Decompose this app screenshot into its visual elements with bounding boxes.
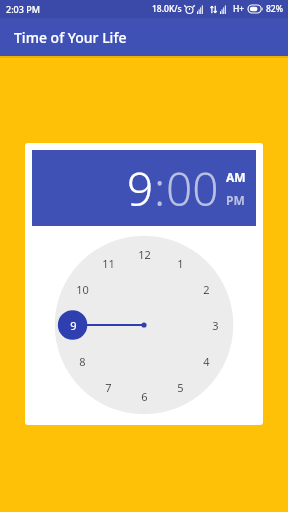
button[interactable]: 3 bbox=[201, 311, 230, 340]
staticText: 2 bbox=[203, 282, 210, 297]
staticText: 4 bbox=[203, 354, 210, 369]
button[interactable]: 00 bbox=[166, 157, 219, 220]
button[interactable]: PM bbox=[226, 192, 245, 208]
button[interactable]: 2 bbox=[192, 275, 221, 304]
staticText: Time of Your Life bbox=[14, 28, 127, 47]
staticText: 5 bbox=[177, 380, 184, 395]
button[interactable]: 9 bbox=[127, 157, 154, 220]
button[interactable]: 11 bbox=[94, 249, 123, 278]
staticText: 82% bbox=[266, 3, 283, 15]
staticText: : bbox=[154, 157, 166, 220]
staticText: 7 bbox=[105, 380, 112, 395]
staticText: 3 bbox=[212, 318, 219, 333]
button[interactable]: 5 bbox=[166, 373, 195, 402]
staticText: 11 bbox=[102, 256, 115, 271]
button[interactable]: 7 bbox=[94, 373, 123, 402]
button[interactable]: 8 bbox=[68, 347, 97, 376]
button[interactable]: 6 bbox=[130, 382, 159, 411]
staticText: 8 bbox=[79, 354, 86, 369]
staticText: AM bbox=[226, 169, 246, 185]
staticText: 1 bbox=[177, 256, 184, 271]
staticText: 12 bbox=[138, 247, 151, 262]
button[interactable]: 1 bbox=[166, 249, 195, 278]
staticText: PM bbox=[226, 192, 245, 208]
staticText: 6 bbox=[141, 389, 148, 404]
staticText: 2:03 PM bbox=[6, 3, 40, 15]
button[interactable]: Clock face, hour picker bbox=[32, 232, 256, 418]
button[interactable]: AM bbox=[226, 169, 246, 185]
button[interactable]: 12 bbox=[130, 240, 159, 269]
button[interactable]: 9 bbox=[59, 311, 88, 340]
staticText: 18.0K/s bbox=[152, 3, 182, 15]
staticText: H+ bbox=[233, 3, 245, 15]
staticText: 10 bbox=[76, 282, 89, 297]
staticText: 9 bbox=[70, 318, 77, 333]
button[interactable]: 4 bbox=[192, 347, 221, 376]
button[interactable]: 10 bbox=[68, 275, 97, 304]
